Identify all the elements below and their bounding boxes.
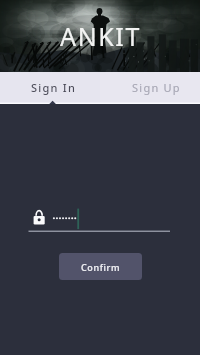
staticText: Confirm [81, 261, 121, 273]
staticText: Sign In [31, 80, 77, 95]
staticText: Sign Up [132, 80, 181, 95]
staticText: ANKIT [60, 19, 141, 53]
button[interactable]: Confirm [59, 253, 142, 280]
button[interactable]: Sign Up [100, 72, 200, 104]
button[interactable]: Sign In [0, 72, 100, 104]
